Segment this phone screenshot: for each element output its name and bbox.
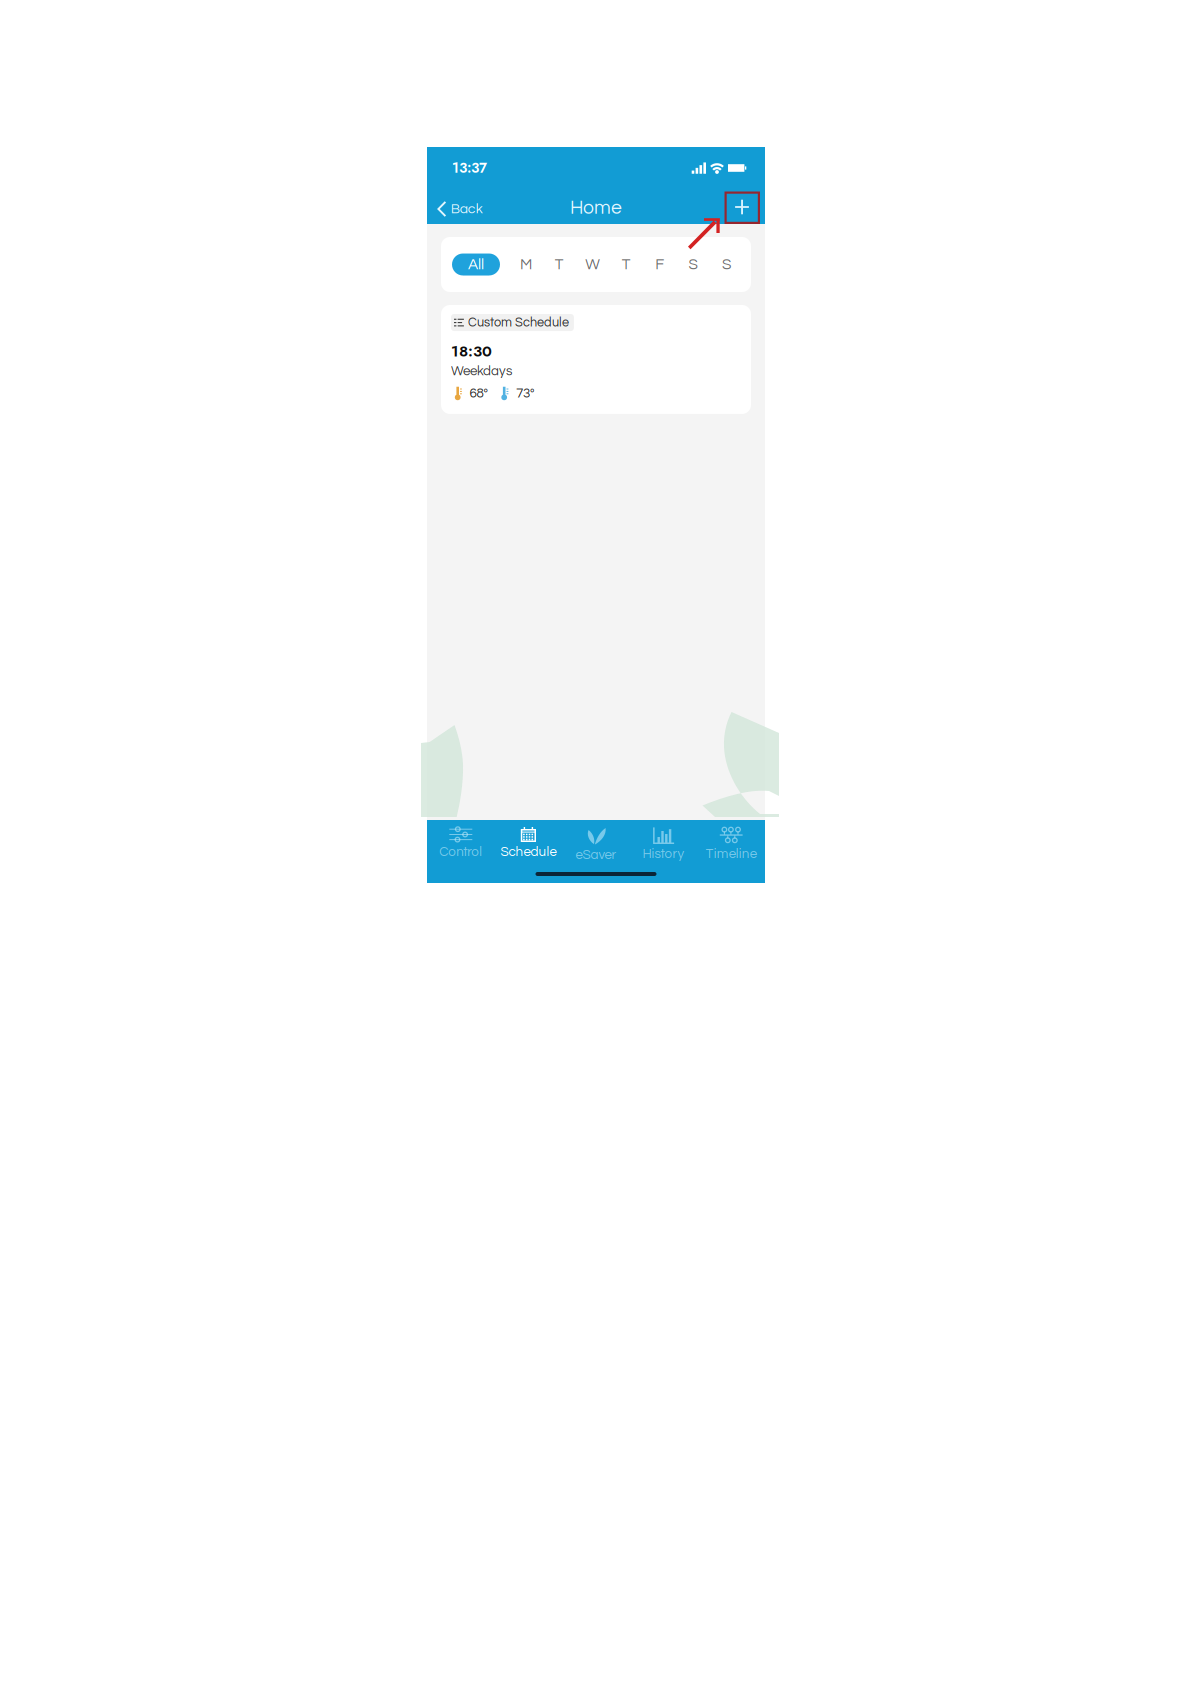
staticText: 18:30 [451,340,492,362]
staticText: Home [570,198,622,218]
staticText: Control [439,845,482,859]
button[interactable]: S [686,252,701,276]
staticText: T [622,257,631,272]
staticText: Back [451,202,483,216]
staticText: 73° [516,387,534,400]
button[interactable]: W [585,252,600,276]
staticText: F [655,257,664,272]
staticText: Custom Schedule [468,316,569,329]
staticText: Schedule [500,845,556,859]
staticText: S [722,257,731,272]
button[interactable]: All [452,253,500,275]
button[interactable]: Timeline [697,820,765,862]
staticText: All [468,257,484,272]
button[interactable]: T [619,252,634,276]
staticText: S [689,257,698,272]
staticText: 68° [469,387,487,400]
button[interactable]: Custom Schedule [441,305,751,414]
staticText: M [520,257,532,272]
button[interactable]: History [630,820,697,862]
staticText: W [585,257,600,272]
staticText: T [555,257,564,272]
button[interactable]: Schedule [495,820,562,862]
staticText: History [643,847,685,861]
button[interactable]: eSaver [562,820,630,862]
button[interactable]: Add schedule [719,183,765,224]
button[interactable]: S [719,252,734,276]
button[interactable]: Control [427,820,495,862]
button[interactable]: M [518,252,533,276]
staticText: Weekdays [451,364,512,378]
staticText: 13:37 [452,158,487,178]
button[interactable]: T [552,252,567,276]
staticText: eSaver [575,848,616,862]
button[interactable]: Back [427,183,491,224]
staticText: Timeline [706,847,757,861]
button[interactable]: F [652,252,667,276]
